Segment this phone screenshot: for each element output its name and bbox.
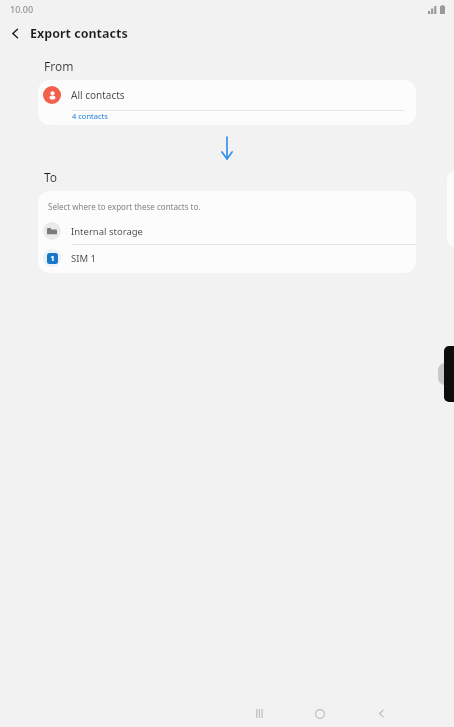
staticText: To <box>44 169 58 185</box>
staticText: SIM 1 <box>71 252 96 265</box>
button[interactable]: 1 <box>38 245 416 271</box>
button[interactable]: Back <box>0 18 30 48</box>
button[interactable]: Edge panel handle <box>438 363 453 385</box>
button[interactable]: Back <box>365 700 397 727</box>
staticText: 10.00 <box>10 3 34 15</box>
staticText: Internal storage <box>71 225 143 238</box>
staticText: 4 contacts <box>72 111 108 121</box>
button[interactable]: Home <box>304 700 336 727</box>
button[interactable]: Recents <box>244 700 276 727</box>
staticText: 1 <box>50 254 55 264</box>
button[interactable]: All contacts <box>38 80 416 125</box>
staticText: All contacts <box>71 88 125 102</box>
staticText: Select where to export these contacts to… <box>48 201 201 212</box>
button[interactable]: Internal storage <box>38 218 416 244</box>
staticText: Export contacts <box>30 25 128 42</box>
staticText: From <box>44 58 74 74</box>
